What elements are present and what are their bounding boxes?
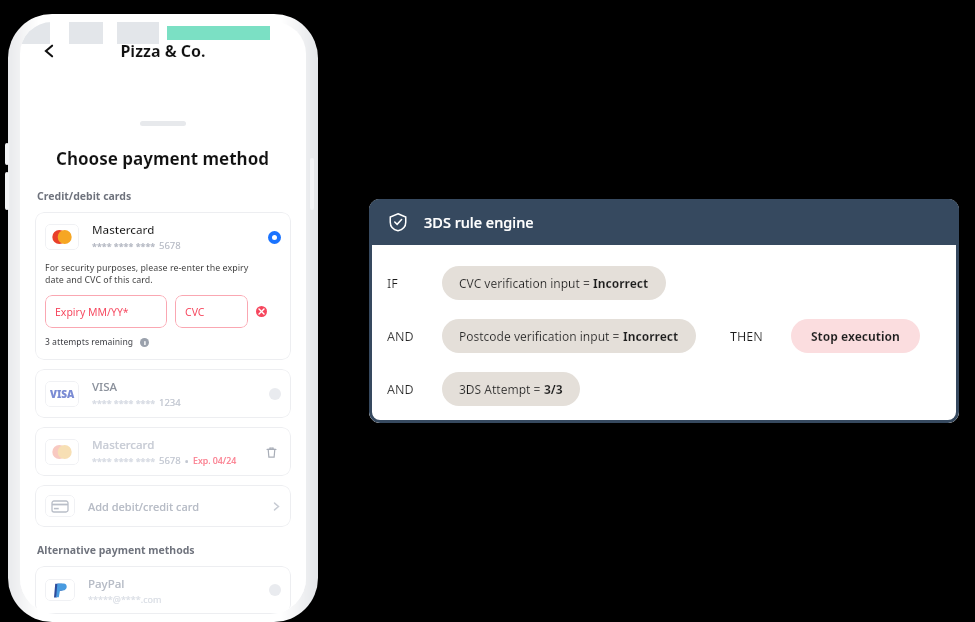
staticText: 1234 [159,396,181,409]
button[interactable]: Stop execution [791,319,920,353]
staticText: CVC [185,305,205,319]
staticText: Credit/debit cards [37,189,132,203]
button[interactable]: Mastercard [35,212,291,360]
staticText: **** **** **** [92,455,156,467]
button[interactable]: Back [32,34,66,68]
staticText: • [185,455,189,467]
staticText: Choose payment method [56,147,270,170]
button[interactable]: Expiry MM/YY* [45,295,167,328]
button[interactable]: Delete card [261,442,281,462]
button[interactable]: PayPal [35,566,291,614]
staticText: Pizza & Co. [120,40,206,62]
button[interactable]: 3DS Attempt = [442,372,580,406]
button[interactable]: CVC verification input = [442,266,666,300]
staticText: **** **** **** [92,397,156,409]
staticText: Incorrect [593,275,649,291]
button[interactable]: Mastercard [35,427,291,476]
other: Info [140,338,149,347]
staticText: AND [387,381,414,398]
staticText: PayPal [88,576,125,592]
staticText: 5678 [159,454,181,467]
staticText: i [144,339,146,347]
staticText: 3/3 [544,381,563,397]
staticText: AND [387,328,414,345]
staticText: 3DS Attempt = [459,381,544,397]
staticText: THEN [730,328,763,345]
staticText: Alternative payment methods [37,543,195,557]
staticText: Mastercard [92,222,155,238]
staticText: IF [387,275,398,292]
staticText: Incorrect [623,328,679,344]
button[interactable]: VISA [35,369,291,418]
button[interactable]: CVC [175,295,248,328]
staticText: Stop execution [811,328,900,344]
staticText: Mastercard [92,437,155,453]
staticText: 5678 [159,239,181,252]
staticText: 3DS rule engine [424,212,534,232]
staticText: Expiry MM/YY* [55,305,129,319]
staticText: CVC verification input = [459,275,593,291]
staticText: For security purposes, please re-enter t… [45,262,249,286]
staticText: *****@****.com [88,593,162,605]
staticText: Postcode verification input = [459,328,623,344]
staticText: Add debit/credit card [88,499,272,514]
other: Error [256,306,267,317]
staticText: 3 attempts remaining [45,336,133,348]
staticText: VISA [92,379,118,395]
button[interactable]: Postcode verification input = [442,319,696,353]
staticText: VISA [50,387,75,401]
staticText: Exp. 04/24 [193,455,237,467]
button[interactable]: Add debit/credit card [35,485,291,527]
staticText: **** **** **** [92,240,156,252]
